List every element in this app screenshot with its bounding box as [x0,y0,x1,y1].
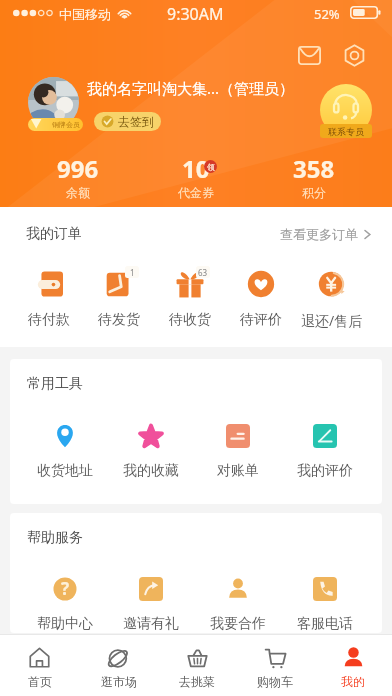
staticText: 查看更多订单 [280,226,358,242]
staticText: 358 [293,152,335,185]
button[interactable]: 收货地址 [22,424,108,480]
staticText: 帮助服务 [27,529,83,547]
staticText: 我要合作 [210,615,266,633]
staticText: 我的订单 [26,225,82,243]
button[interactable]: Settings [336,37,372,73]
staticText: 10 [182,152,210,185]
button[interactable]: 逛市场 [79,635,158,696]
staticText: 退还/售后 [301,311,363,330]
staticText: 1 [130,267,135,278]
staticText: 63 [198,267,208,278]
button[interactable]: 1 [84,270,154,329]
button[interactable]: 待评价 [225,270,296,329]
staticText: 待发货 [98,311,140,329]
staticText: 积分 [302,185,326,200]
staticText: 我的收藏 [123,462,179,480]
button[interactable]: 我要合作 [194,577,281,633]
button[interactable]: 我的 [314,635,392,696]
staticText: 购物车 [257,674,293,689]
button[interactable]: 客服电话 [281,577,368,633]
button[interactable]: 去签到 [94,112,161,131]
staticText: ? [61,577,70,600]
button[interactable]: 联系专员 [320,84,372,138]
button[interactable]: 购物车 [236,635,314,696]
button[interactable]: 996 [19,152,137,200]
staticText: 中国移动 [59,6,111,22]
button[interactable]: 10 [137,152,255,200]
staticText: 我的名字叫淘大集...（管理员） [87,78,295,98]
staticText: 逛市场 [101,674,137,689]
button[interactable]: 查看更多订单 [280,218,371,250]
button[interactable]: 我的收藏 [108,424,194,480]
staticText: 对账单 [217,462,259,480]
staticText: 联系专员 [328,126,364,137]
staticText: 去签到 [118,114,154,129]
staticText: 代金券 [178,185,214,200]
staticText: 首页 [28,674,52,689]
staticText: 邀请有礼 [123,615,179,633]
staticText: 待收货 [169,311,211,329]
staticText: 去挑菜 [179,674,215,689]
staticText: 帮助中心 [37,615,93,633]
button[interactable]: ? [22,577,108,633]
staticText: 待付款 [28,311,70,329]
staticText: 我的评价 [297,462,353,480]
button[interactable]: 我的评价 [281,424,368,480]
button[interactable]: 邀请有礼 [108,577,194,633]
staticText: 常用工具 [27,375,83,393]
button[interactable]: 对账单 [194,424,281,480]
button[interactable]: 63 [154,270,225,329]
staticText: 9:30AM [167,3,224,25]
staticText: 待评价 [240,311,282,329]
button[interactable]: Messages [291,37,327,73]
staticText: 我的 [341,674,365,689]
button[interactable]: Avatar [28,77,79,128]
staticText: 客服电话 [297,615,353,633]
staticText: 收货地址 [37,462,93,480]
staticText: 领 [207,162,215,172]
button[interactable]: 退还/售后 [296,270,367,330]
staticText: 铜牌会员 [52,120,80,129]
button[interactable]: 待付款 [14,270,84,329]
staticText: 996 [57,152,99,185]
button[interactable]: 358 [255,152,373,200]
staticText: 余额 [66,185,90,200]
button[interactable]: 去挑菜 [158,635,236,696]
staticText: 52% [314,5,340,23]
button[interactable]: 首页 [0,635,79,696]
